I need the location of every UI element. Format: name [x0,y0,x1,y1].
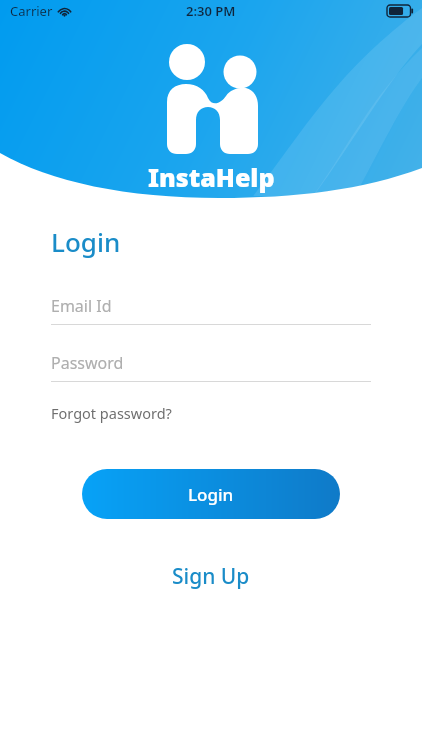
button[interactable]: Sign Up [156,556,266,597]
staticText: Login [51,224,121,259]
staticText: Carrier [10,2,53,20]
staticText: 2:30 PM [186,2,236,20]
button[interactable]: Login [82,469,340,519]
staticText: InstaHelp [148,160,275,194]
button[interactable]: Email Id [51,295,371,325]
staticText: Password [51,352,124,374]
staticText: Forgot password? [51,403,172,423]
staticText: Email Id [51,295,112,317]
staticText: Login [188,483,234,506]
staticText: Sign Up [172,562,250,591]
button[interactable]: Forgot password? [51,401,172,425]
button[interactable]: Password [51,352,371,382]
